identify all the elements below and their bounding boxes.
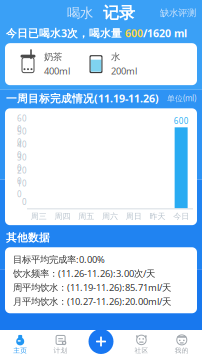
staticText: 600 bbox=[17, 113, 27, 134]
staticText: 一周目标完成情况(11.19-11.26) bbox=[6, 91, 159, 105]
button[interactable]: 社区 bbox=[121, 330, 162, 359]
staticText: 今日已喝水3次，喝水量 bbox=[6, 26, 125, 40]
staticText: 水 bbox=[111, 51, 120, 63]
button[interactable]: 计划 bbox=[40, 330, 81, 359]
staticText: 600 bbox=[174, 116, 189, 126]
staticText: 周四 bbox=[55, 211, 71, 221]
staticText: 周五 bbox=[78, 211, 94, 221]
button[interactable]: Add drink bbox=[84, 324, 118, 358]
staticText: 周平均饮水：(11.19-11.26):85.71ml/天 bbox=[13, 281, 171, 293]
staticText: 周六 bbox=[102, 211, 118, 221]
staticText: /1620 ml bbox=[143, 26, 187, 40]
button[interactable]: 我的 bbox=[162, 330, 202, 359]
staticText: 400ml bbox=[44, 65, 70, 77]
staticText: 缺水评测 bbox=[160, 7, 196, 19]
staticText: 单位(ml) bbox=[167, 93, 196, 103]
staticText: 500 bbox=[17, 126, 27, 147]
staticText: 记录 bbox=[103, 3, 135, 23]
button[interactable]: 缺水评测 bbox=[160, 7, 202, 19]
staticText: 200ml bbox=[111, 65, 137, 77]
staticText: 我的 bbox=[175, 346, 189, 355]
staticText: 社区 bbox=[134, 346, 148, 355]
staticText: 月平均饮水：(10.27-11.26):20.00ml/天 bbox=[13, 295, 171, 307]
staticText: 饮水频率：(11.26-11.26):3.00次/天 bbox=[13, 267, 155, 279]
staticText: 200 bbox=[17, 165, 27, 186]
staticText: 400 bbox=[17, 139, 27, 160]
staticText: 昨天 bbox=[149, 211, 165, 221]
staticText: 奶茶 bbox=[44, 51, 62, 63]
button[interactable]: 喝水 bbox=[67, 5, 93, 21]
staticText: 今日 bbox=[173, 211, 189, 221]
button[interactable]: 主页 bbox=[0, 330, 40, 359]
staticText: 0 bbox=[22, 196, 27, 207]
staticText: 喝水 bbox=[67, 5, 93, 21]
staticText: 周三 bbox=[31, 211, 47, 221]
staticText: 目标平均完成率:0.00% bbox=[13, 253, 105, 265]
staticText: 主页 bbox=[13, 346, 27, 355]
staticText: 计划 bbox=[54, 346, 68, 355]
staticText: 100 bbox=[17, 178, 27, 199]
staticText: 600 bbox=[125, 26, 143, 40]
button[interactable]: 记录 bbox=[103, 3, 135, 23]
staticText: 300 bbox=[17, 152, 27, 173]
staticText: 其他数据 bbox=[6, 231, 50, 244]
staticText: 周日 bbox=[126, 211, 142, 221]
